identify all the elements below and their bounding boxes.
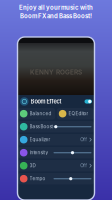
button[interactable]: Tempo xyxy=(18,173,94,184)
staticText: Boom FX and Bass Boost! xyxy=(20,12,92,20)
staticText: Tempo xyxy=(29,176,45,181)
button[interactable]: EQ Editor xyxy=(57,108,94,119)
staticText: EQ Editor xyxy=(68,111,88,116)
button[interactable]: Intensity xyxy=(18,147,94,158)
staticText: KENNY ROGERS xyxy=(30,68,82,76)
staticText: Off xyxy=(80,137,87,142)
staticText: Enjoy all your music with xyxy=(19,4,93,11)
staticText: Intensity xyxy=(29,150,48,155)
staticText: Off xyxy=(80,163,87,168)
button[interactable]: Bass Boost xyxy=(18,121,94,132)
staticText: Boom Effect xyxy=(30,98,61,105)
staticText: Bass Boost xyxy=(29,124,52,129)
staticText: 3D xyxy=(29,163,35,168)
button[interactable]: Balanced xyxy=(18,108,55,119)
button[interactable]: Equalizer xyxy=(18,134,94,145)
button[interactable]: 3D xyxy=(18,160,94,171)
staticText: Balanced xyxy=(29,111,51,116)
staticText: Equalizer xyxy=(29,137,50,142)
